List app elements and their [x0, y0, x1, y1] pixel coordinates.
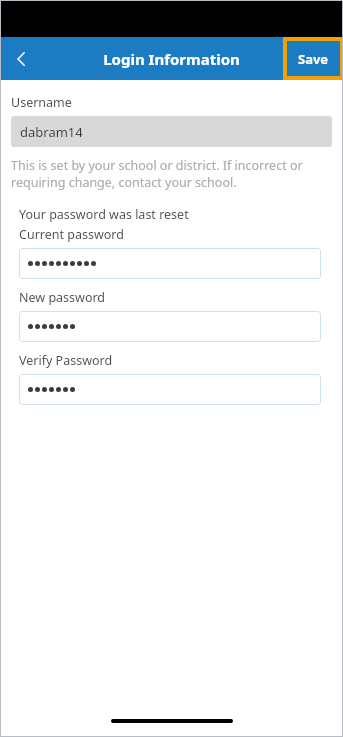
staticText: New password — [19, 289, 106, 306]
staticText: Verify Password — [19, 352, 113, 369]
staticText: Username — [11, 94, 72, 111]
button[interactable] — [19, 311, 321, 342]
button[interactable] — [19, 374, 321, 405]
button[interactable]: Back — [0, 37, 44, 80]
staticText: Your password was last reset — [19, 206, 189, 223]
button[interactable]: dabram14 — [11, 116, 332, 147]
staticText: Login Information — [103, 49, 240, 69]
button[interactable]: Save — [287, 41, 340, 76]
staticText: dabram14 — [20, 123, 83, 141]
staticText: Save — [298, 50, 329, 68]
staticText: This is set by your school or district. … — [11, 157, 329, 190]
staticText: Current password — [19, 226, 124, 243]
button[interactable] — [19, 248, 321, 279]
